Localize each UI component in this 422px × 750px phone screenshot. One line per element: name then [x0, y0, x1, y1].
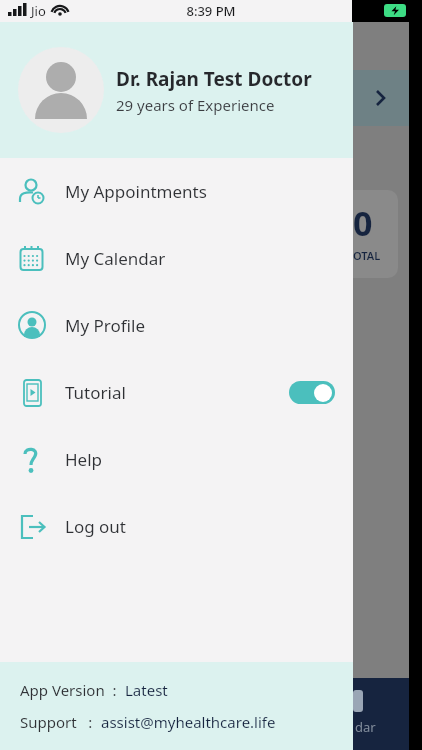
button[interactable]: My Appointments	[0, 158, 353, 225]
staticText: Dr. Rajan Test Doctor	[116, 66, 312, 92]
staticText: Help	[65, 448, 103, 471]
staticText: Jio	[31, 2, 46, 20]
button[interactable]: My Calendar	[0, 225, 353, 292]
staticText: OTAL	[353, 248, 381, 263]
button[interactable]: Dr. Rajan Test Doctor	[0, 22, 353, 158]
staticText: Tutorial	[65, 381, 126, 404]
staticText: 8:39 PM	[0, 2, 422, 20]
staticText: My Appointments	[65, 180, 207, 203]
button[interactable]: Log out	[0, 493, 353, 560]
staticText: My Calendar	[65, 247, 166, 270]
button[interactable]: Tutorial toggle	[289, 381, 335, 404]
staticText: App Version :	[20, 680, 125, 700]
staticText: dar	[355, 718, 376, 736]
staticText: 0	[353, 200, 373, 246]
button[interactable]: assist@myhealthcare.life	[101, 712, 276, 732]
staticText: 29 years of Experience	[116, 95, 275, 115]
button[interactable]: Help	[0, 426, 353, 493]
button[interactable]: Latest	[125, 680, 168, 700]
button[interactable]: My Profile	[0, 292, 353, 359]
button[interactable]: Tutorial	[0, 359, 353, 426]
staticText: Log out	[65, 515, 126, 538]
staticText: My Profile	[65, 314, 145, 337]
staticText: Support :	[20, 712, 101, 732]
